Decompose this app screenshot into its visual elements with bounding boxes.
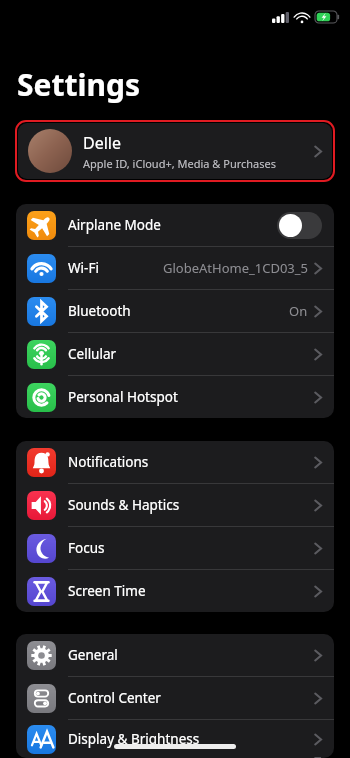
button[interactable]: Control Center [16, 677, 334, 720]
button[interactable]: Bluetooth [16, 290, 334, 333]
staticText: Control Center [68, 689, 161, 707]
staticText: Cellular [68, 345, 117, 363]
button[interactable]: Personal Hotspot [16, 376, 334, 418]
staticText: Apple ID, iCloud+, Media & Purchases [83, 156, 277, 171]
button[interactable]: Airplane Mode [16, 204, 334, 247]
button[interactable]: Sounds & Haptics [16, 484, 334, 527]
staticText: Screen Time [68, 582, 146, 600]
staticText: Bluetooth [68, 302, 131, 320]
button[interactable]: Screen Time [16, 570, 334, 612]
button[interactable]: Wi-Fi [16, 247, 334, 290]
button[interactable]: Display & Brightness [16, 720, 334, 758]
staticText: On [289, 302, 308, 320]
button[interactable]: Airplane Mode toggle [277, 212, 322, 239]
staticText: Settings [17, 64, 140, 105]
staticText: GlobeAtHome_1CD03_5 [163, 259, 308, 277]
staticText: Airplane Mode [68, 216, 161, 234]
button[interactable]: Notifications [16, 441, 334, 484]
button[interactable]: Cellular [16, 333, 334, 376]
staticText: Personal Hotspot [68, 388, 178, 406]
staticText: Delle [83, 132, 121, 154]
staticText: General [68, 646, 118, 664]
staticText: Display & Brightness [68, 730, 200, 748]
button[interactable]: General [16, 634, 334, 677]
button[interactable]: Delle [18, 123, 332, 179]
staticText: Notifications [68, 453, 149, 471]
staticText: Wi-Fi [68, 259, 99, 277]
staticText: Focus [68, 539, 105, 557]
staticText: Sounds & Haptics [68, 496, 180, 514]
button[interactable]: Focus [16, 527, 334, 570]
